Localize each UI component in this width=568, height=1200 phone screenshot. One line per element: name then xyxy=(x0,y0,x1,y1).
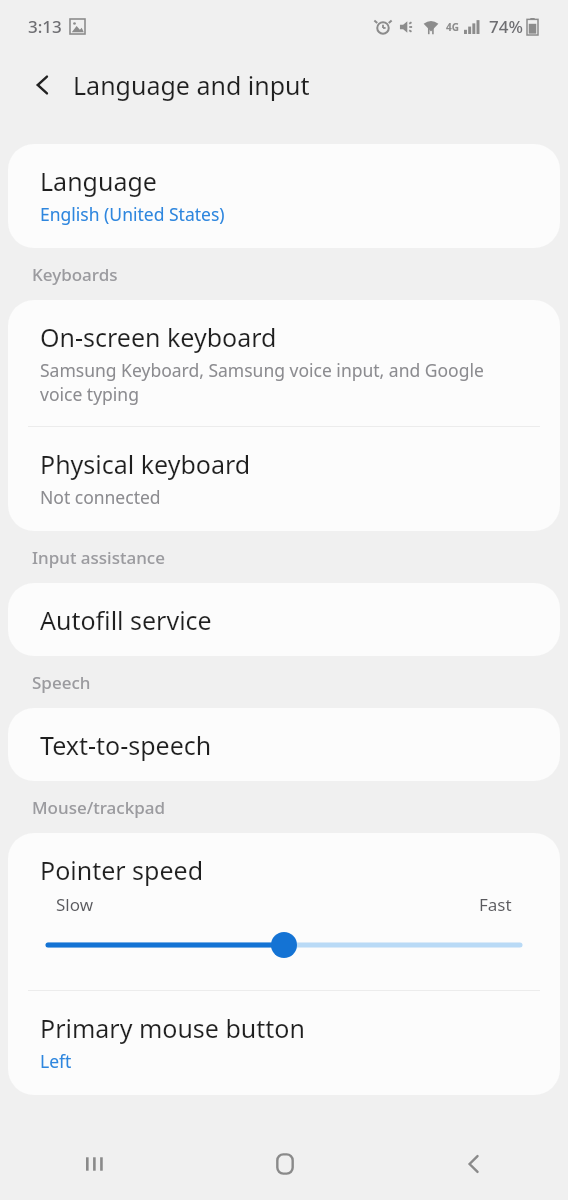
staticText: Language and input xyxy=(73,68,310,102)
staticText: Input assistance xyxy=(32,546,568,569)
staticText: Samsung Keyboard, Samsung voice input, a… xyxy=(40,358,528,406)
button[interactable]: Pointer speed xyxy=(8,833,560,990)
staticText: Mouse/trackpad xyxy=(32,796,568,819)
staticText: Left xyxy=(40,1049,72,1073)
staticText: 74% xyxy=(489,15,523,38)
staticText: 4G xyxy=(446,20,459,34)
button[interactable]: Language xyxy=(8,144,560,248)
staticText: Text-to-speech xyxy=(40,728,212,762)
staticText: On-screen keyboard xyxy=(40,320,277,354)
staticText: English (United States) xyxy=(40,202,225,226)
button[interactable]: Back xyxy=(20,62,66,108)
button[interactable]: Home xyxy=(190,1128,379,1200)
staticText: Fast xyxy=(479,893,512,916)
staticText: Primary mouse button xyxy=(40,1011,305,1045)
button[interactable]: Autofill service xyxy=(8,583,560,656)
button[interactable]: Text-to-speech xyxy=(8,708,560,781)
staticText: Language xyxy=(40,164,157,198)
button[interactable]: Physical keyboard xyxy=(8,427,560,531)
staticText: Speech xyxy=(32,671,568,694)
button[interactable]: Primary mouse button xyxy=(8,991,560,1095)
staticText: Pointer speed xyxy=(40,853,204,887)
button[interactable]: Back xyxy=(379,1128,568,1200)
staticText: Slow xyxy=(56,893,94,916)
button[interactable]: On-screen keyboard xyxy=(8,300,560,426)
button[interactable]: Recent apps xyxy=(0,1128,190,1200)
staticText: Autofill service xyxy=(40,603,212,637)
staticText: Physical keyboard xyxy=(40,447,251,481)
staticText: 3:13 xyxy=(28,15,62,38)
staticText: Keyboards xyxy=(32,263,568,286)
staticText: Not connected xyxy=(40,485,161,509)
